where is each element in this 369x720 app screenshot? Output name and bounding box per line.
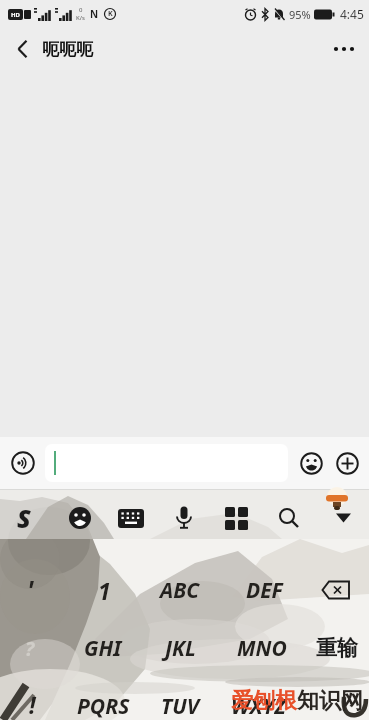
button[interactable]: MNO	[226, 632, 298, 664]
button[interactable]	[268, 497, 310, 539]
button[interactable]: PQRS	[67, 690, 139, 720]
button[interactable]: ABC	[144, 574, 216, 606]
staticText: S	[17, 501, 31, 535]
button[interactable]: WXYZ	[222, 690, 294, 720]
button[interactable]	[8, 35, 36, 63]
staticText: N	[90, 7, 99, 21]
staticText: MNO	[237, 634, 287, 663]
staticText: TUV	[161, 692, 200, 720]
staticText: DEF	[246, 576, 283, 605]
button[interactable]	[329, 34, 359, 64]
staticText: ABC	[160, 576, 200, 605]
staticText: 爱刨根	[231, 687, 297, 715]
button[interactable]	[332, 448, 362, 478]
staticText: 知识网	[297, 687, 363, 715]
button[interactable]	[110, 497, 152, 539]
staticText: 0	[79, 6, 83, 14]
staticText: 1	[98, 575, 111, 606]
button[interactable]: '	[0, 572, 66, 604]
button[interactable]	[215, 497, 257, 539]
staticText: K	[108, 9, 113, 19]
button[interactable]: S	[3, 497, 45, 539]
button[interactable]: ?	[0, 632, 66, 664]
button[interactable]: DEF	[228, 574, 300, 606]
staticText: 95%	[289, 7, 311, 22]
button[interactable]: GHI	[67, 632, 139, 664]
staticText: K/s	[76, 14, 85, 22]
button[interactable]	[59, 497, 101, 539]
staticText: HD	[11, 11, 20, 19]
button[interactable]	[163, 497, 205, 539]
button[interactable]: TUV	[144, 690, 216, 720]
staticText: JKL	[165, 634, 196, 663]
button[interactable]	[45, 444, 288, 482]
staticText: 重输	[316, 635, 358, 661]
staticText: GHI	[84, 634, 122, 663]
button[interactable]: !	[0, 688, 68, 720]
staticText: !	[29, 689, 36, 720]
staticText: '	[27, 572, 34, 604]
button[interactable]: 重输	[307, 634, 367, 662]
button[interactable]	[7, 447, 39, 479]
staticText: 呃呃呃	[42, 39, 93, 60]
button[interactable]: 1	[68, 574, 140, 606]
button[interactable]	[312, 576, 360, 604]
button[interactable]	[296, 448, 326, 478]
staticText: PQRS	[77, 692, 130, 720]
button[interactable]	[322, 497, 364, 539]
staticText: 4:45	[340, 6, 364, 22]
staticText: WXYZ	[231, 692, 286, 720]
staticText: ?	[25, 635, 35, 662]
button[interactable]: JKL	[144, 632, 216, 664]
